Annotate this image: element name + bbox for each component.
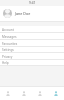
staticText: Settings (2, 48, 14, 52)
staticText: Jane Doe (15, 11, 31, 16)
staticText: 9:41 (29, 1, 36, 5)
button[interactable]: Privacy (0, 53, 64, 60)
button[interactable]: Search (16, 87, 32, 100)
button[interactable]: Help (0, 59, 64, 66)
staticText: Help (2, 61, 9, 65)
button[interactable]: Home (0, 87, 16, 100)
staticText: Privacy (2, 55, 13, 59)
button[interactable]: Messages (0, 33, 64, 40)
button[interactable]: Favourites (0, 40, 64, 47)
staticText: Favourites (2, 42, 18, 46)
staticText: Messages (2, 35, 17, 39)
button[interactable]: Settings (0, 46, 64, 53)
button[interactable]: Account (0, 26, 64, 33)
button[interactable]: Profile (48, 87, 64, 100)
button[interactable]: Notifications (32, 87, 48, 100)
staticText: Account (2, 28, 14, 32)
button[interactable]: Jane Doe (0, 6, 64, 21)
